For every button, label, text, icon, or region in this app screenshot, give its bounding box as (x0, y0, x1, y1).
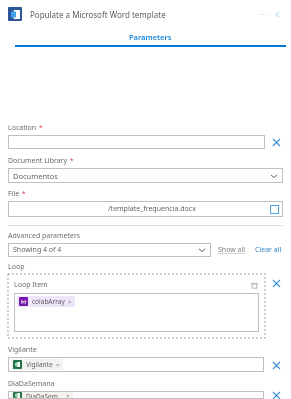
button[interactable]: Parameters (10, 32, 291, 47)
staticText: ⋯ (259, 10, 267, 19)
button[interactable]: Clear (269, 391, 283, 399)
staticText: Show all (218, 245, 246, 255)
button[interactable]: {x} (17, 296, 256, 329)
button[interactable]: Delete loop (249, 280, 259, 290)
button[interactable]: Clear all (254, 245, 283, 255)
staticText: Parameters (129, 32, 172, 42)
staticText: × (56, 361, 60, 369)
staticText: Document Library (8, 156, 68, 166)
staticText: Advanced parameters (8, 231, 81, 241)
staticText: × (66, 392, 70, 398)
staticText: {x} (21, 299, 27, 304)
button[interactable]: More options (257, 8, 269, 20)
button[interactable] (8, 135, 265, 149)
staticText: Showing 4 of 4 (13, 245, 62, 255)
button[interactable]: Documentos (13, 168, 278, 183)
staticText: Populate a Microsoft Word template (30, 9, 166, 20)
button[interactable]: Showing 4 of 4 (13, 243, 206, 257)
button[interactable]: Collapse (271, 8, 283, 20)
button[interactable]: Clear (269, 276, 283, 290)
button[interactable]: Vigilante (13, 360, 61, 369)
staticText: * (68, 156, 74, 166)
staticText: colabArray (32, 297, 65, 306)
button[interactable]: DiaDaSem... (11, 391, 261, 399)
button[interactable]: Clear (269, 358, 283, 372)
staticText: Clear all (255, 245, 282, 255)
button[interactable]: /template_frequencia.docx (12, 201, 279, 217)
staticText: * (37, 123, 43, 133)
button[interactable]: Browse file (270, 205, 279, 214)
staticText: DiaDaSem... (26, 392, 63, 398)
staticText: /template_frequencia.docx (108, 204, 196, 214)
button[interactable]: {x} (19, 297, 73, 306)
staticText: × (68, 298, 72, 306)
staticText: Documentos (13, 171, 58, 181)
staticText: DiaDaSemana (8, 379, 55, 389)
staticText: Vigilante (26, 360, 53, 369)
staticText: Loop (8, 262, 25, 272)
button[interactable]: Show all (217, 245, 247, 255)
staticText: Location (8, 123, 37, 133)
staticText: Vigilante (8, 345, 37, 355)
staticText: Loop Item (14, 280, 48, 290)
button[interactable]: DiaDaSem... (13, 392, 71, 398)
staticText: * (20, 189, 26, 199)
staticText: File (8, 189, 20, 199)
button[interactable]: Clear (269, 135, 283, 149)
button[interactable]: Vigilante (11, 357, 261, 372)
